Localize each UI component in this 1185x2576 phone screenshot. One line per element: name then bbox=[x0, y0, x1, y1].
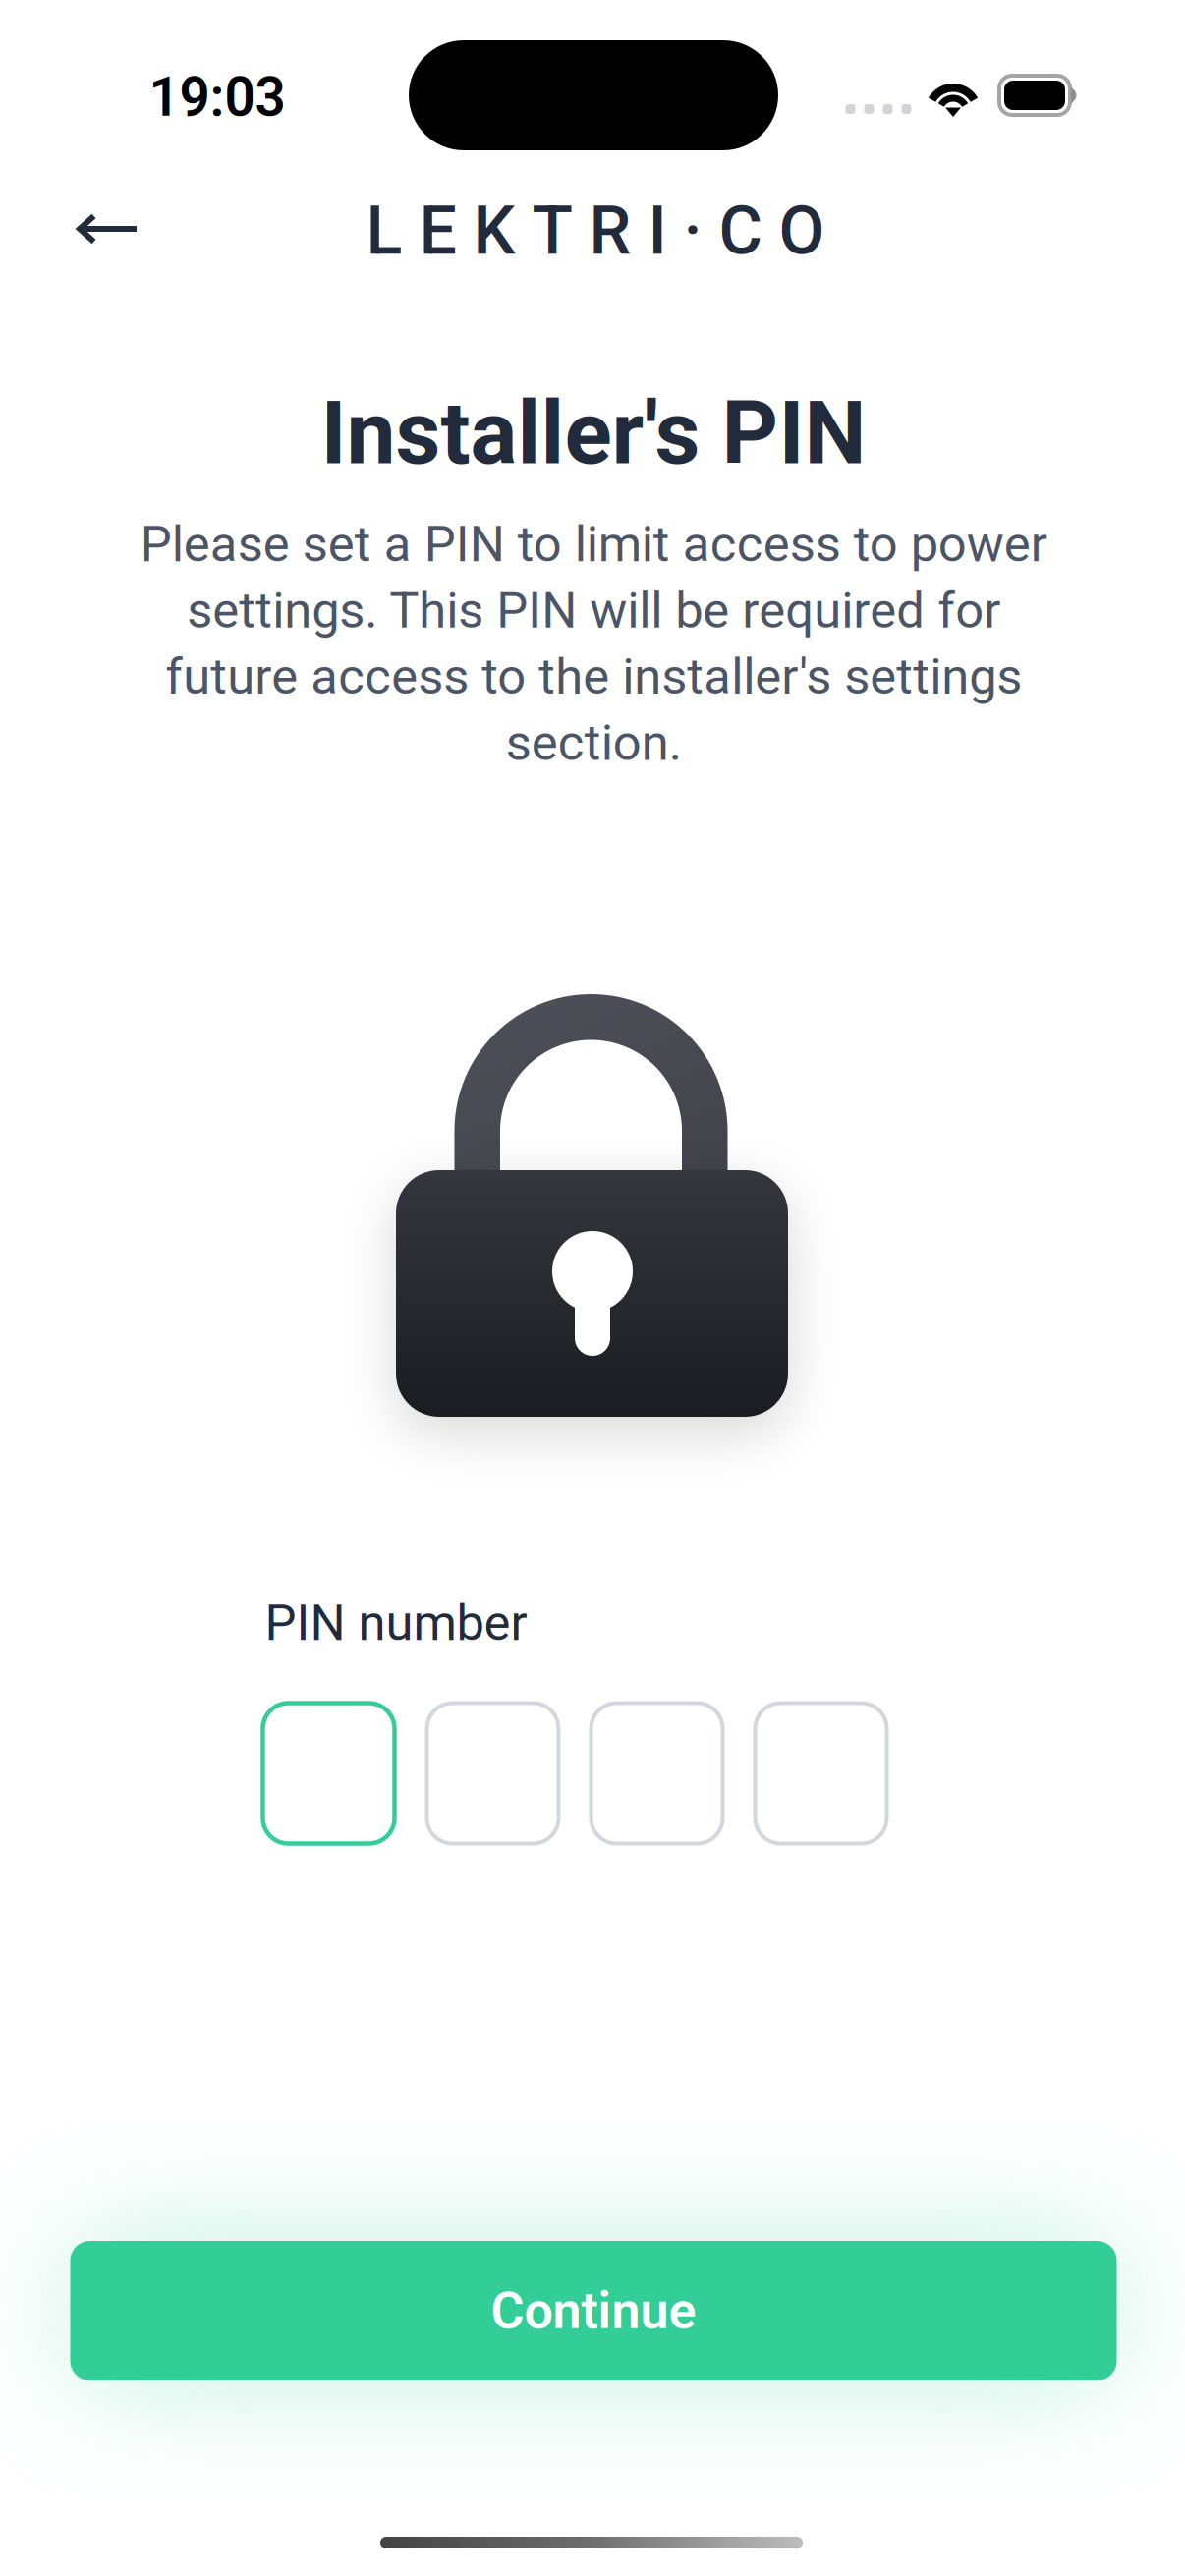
button[interactable]: Continue bbox=[70, 2241, 1117, 2380]
button[interactable]: PIN digit 3 bbox=[591, 1703, 723, 1844]
staticText: LEKTRI·CO bbox=[366, 192, 825, 270]
button[interactable]: PIN digit 1 bbox=[263, 1703, 395, 1844]
button[interactable]: PIN digit 4 bbox=[755, 1703, 887, 1844]
staticText: Continue bbox=[491, 2281, 696, 2341]
button[interactable]: Back bbox=[49, 174, 167, 284]
staticText: PIN number bbox=[265, 1594, 527, 1652]
staticText: Please set a PIN to limit access to powe… bbox=[140, 515, 1047, 772]
staticText: Installer's PIN bbox=[321, 382, 866, 485]
button[interactable]: PIN digit 2 bbox=[427, 1703, 559, 1844]
staticText: 19:03 bbox=[149, 66, 285, 129]
